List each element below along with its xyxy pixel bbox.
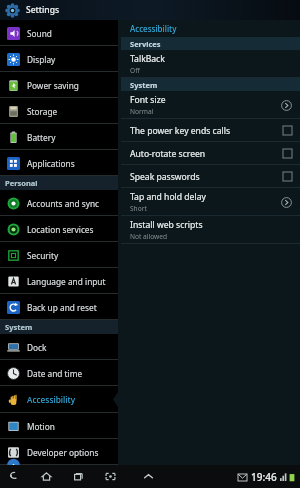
staticText: The power key ends calls (130, 125, 231, 137)
button[interactable]: Font size (121, 91, 300, 119)
button[interactable]: Developer options (0, 439, 118, 465)
staticText: TalkBack (130, 53, 165, 65)
staticText: Personal (5, 178, 38, 188)
button[interactable]: Date and time (0, 360, 118, 386)
button[interactable]: Applications (0, 150, 118, 176)
button[interactable]: Speak passwords (121, 165, 300, 188)
other: up (142, 470, 155, 483)
staticText: Date and time (27, 368, 83, 379)
staticText: Accessibility (130, 23, 177, 34)
staticText: Accessibility (27, 394, 76, 405)
other: Tap and hold delay (281, 197, 292, 208)
other: Font size (281, 100, 292, 111)
staticText: Sound (27, 28, 52, 39)
button[interactable]: Power saving (0, 72, 118, 98)
button[interactable]: The power key ends calls (121, 119, 300, 142)
button[interactable]: Battery (0, 124, 118, 150)
staticText: Accounts and sync (27, 198, 100, 209)
staticText: Display (27, 54, 56, 65)
staticText: Auto-rotate screen (130, 148, 206, 160)
button[interactable]: Accessibility (0, 386, 118, 413)
staticText: System (5, 322, 33, 332)
button[interactable]: Dock (0, 334, 118, 360)
button[interactable]: Security (0, 242, 118, 268)
button[interactable]: Auto-rotate screen (121, 142, 300, 165)
staticText: Power saving (27, 80, 79, 91)
other: back (8, 470, 21, 483)
staticText: Settings (26, 4, 60, 16)
button[interactable]: TalkBack (121, 50, 300, 78)
button[interactable]: Storage (0, 98, 118, 124)
button[interactable]: Motion (0, 413, 118, 439)
staticText: Normal (130, 107, 154, 116)
staticText: Applications (27, 158, 75, 169)
staticText: Language and input (27, 276, 106, 287)
button[interactable]: Install web scripts (121, 216, 300, 244)
staticText: Dock (27, 342, 47, 353)
other: recent (72, 470, 85, 483)
staticText: Motion (27, 421, 55, 432)
staticText: Font size (130, 94, 166, 106)
button[interactable]: Back up and reset (0, 294, 118, 320)
staticText: Battery (27, 132, 56, 143)
other: home (40, 470, 53, 483)
staticText: Developer options (27, 447, 99, 458)
staticText: Security (27, 250, 59, 261)
staticText: Short (130, 204, 147, 213)
button[interactable]: Sound (0, 20, 118, 46)
staticText: Off (130, 66, 140, 75)
staticText: Location services (27, 224, 94, 235)
staticText: Tap and hold delay (130, 191, 206, 203)
staticText: System (130, 80, 158, 90)
staticText: Install web scripts (130, 219, 203, 231)
staticText: Storage (27, 106, 58, 117)
other: shot (104, 470, 117, 483)
staticText: Services (130, 39, 161, 49)
staticText: Not allowed (130, 232, 168, 241)
button[interactable]: Display (0, 46, 118, 72)
button[interactable]: Accounts and sync (0, 190, 118, 216)
staticText: Speak passwords (130, 171, 200, 183)
button[interactable]: Location services (0, 216, 118, 242)
staticText: Back up and reset (27, 302, 97, 313)
staticText: 19:46 (251, 470, 277, 484)
button[interactable]: Language and input (0, 268, 118, 294)
button[interactable]: Tap and hold delay (121, 188, 300, 216)
